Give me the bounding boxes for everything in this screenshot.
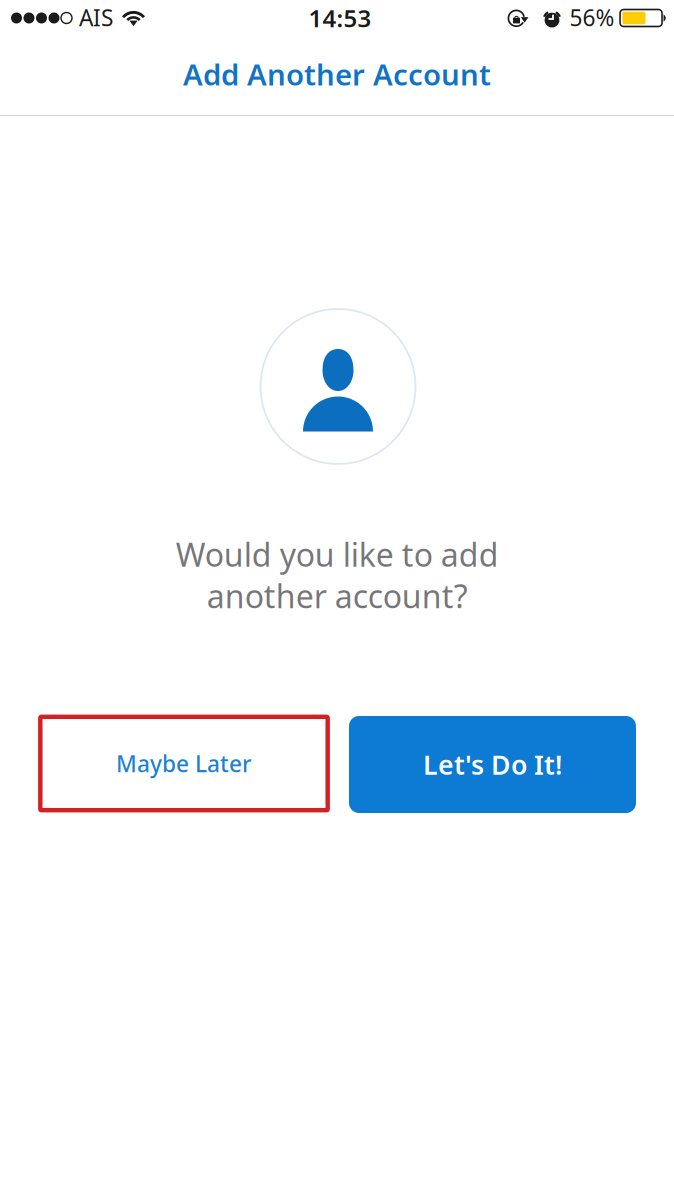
button[interactable]: Let's Do It! [349,716,636,813]
staticText: Maybe Later [116,748,252,778]
staticText: Would you like to add another account? [175,533,498,617]
staticText: AIS [79,2,113,32]
staticText: Add Another Account [183,54,491,93]
button[interactable]: Maybe Later [40,717,328,810]
staticText: Let's Do It! [423,747,562,782]
staticText: 14:53 [308,2,371,34]
staticText: 56% [569,2,614,32]
